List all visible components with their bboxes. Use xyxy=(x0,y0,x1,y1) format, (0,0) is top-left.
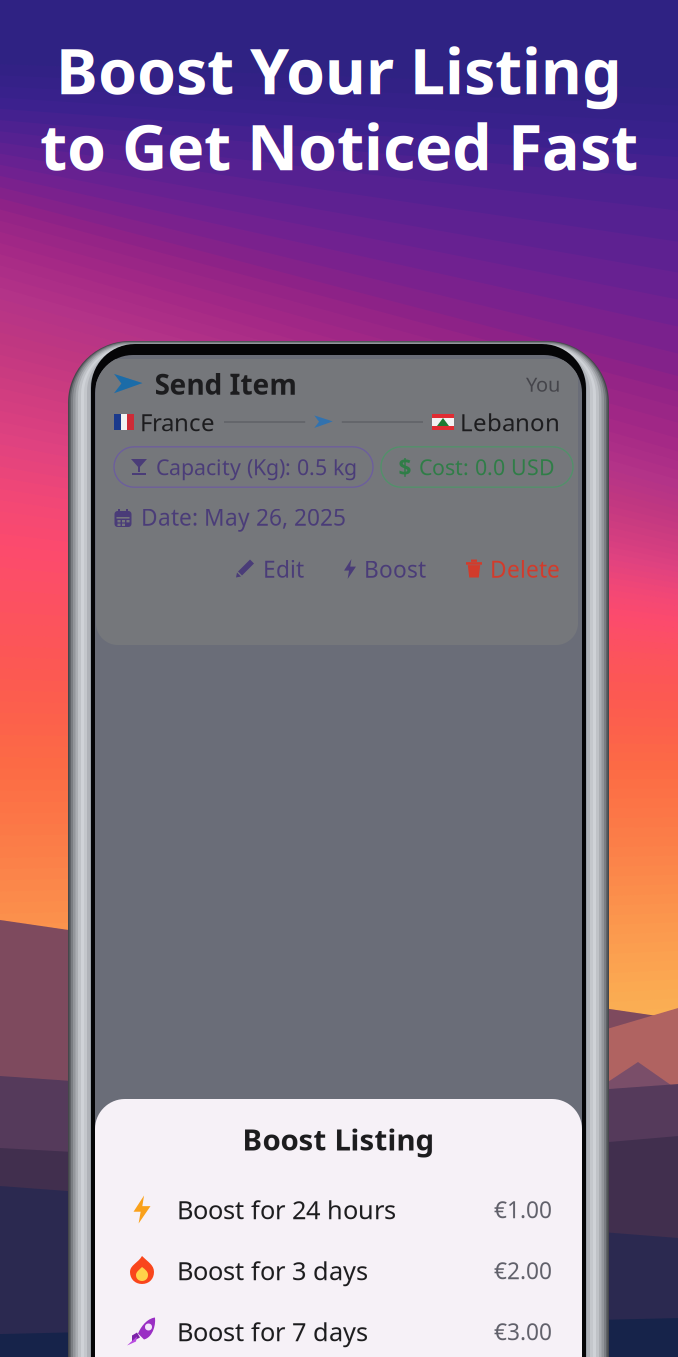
staticText: Capacity (Kg): 0.5 kg xyxy=(156,453,357,481)
staticText: Boost Your Listing xyxy=(56,28,622,112)
button[interactable]: Boost for 3 days xyxy=(95,1240,582,1301)
staticText: $ xyxy=(398,452,411,482)
staticText: €3.00 xyxy=(494,1316,552,1346)
staticText: Date: May 26, 2025 xyxy=(141,502,346,532)
staticText: Boost for 7 days xyxy=(177,1315,368,1348)
staticText: Edit xyxy=(263,554,304,584)
staticText: You xyxy=(526,371,560,397)
staticText: €1.00 xyxy=(494,1194,552,1224)
button[interactable]: Edit xyxy=(236,554,304,584)
button[interactable]: Boost xyxy=(344,554,426,584)
staticText: Lebanon xyxy=(454,406,560,438)
button[interactable]: Boost for 7 days xyxy=(95,1301,582,1357)
staticText: Delete xyxy=(490,554,560,584)
staticText: to Get Noticed Fast xyxy=(40,104,638,188)
staticText: France xyxy=(134,406,215,438)
button[interactable]: Delete xyxy=(466,554,560,584)
staticText: Boost Listing xyxy=(242,1119,434,1158)
staticText: Send Item xyxy=(154,365,296,403)
staticText: Cost: 0.0 USD xyxy=(419,453,555,481)
staticText: €2.00 xyxy=(494,1255,552,1285)
button[interactable]: Boost for 24 hours xyxy=(95,1179,582,1240)
staticText: Boost for 3 days xyxy=(177,1254,368,1287)
staticText: Boost for 24 hours xyxy=(177,1193,396,1226)
staticText: Boost xyxy=(364,554,426,584)
